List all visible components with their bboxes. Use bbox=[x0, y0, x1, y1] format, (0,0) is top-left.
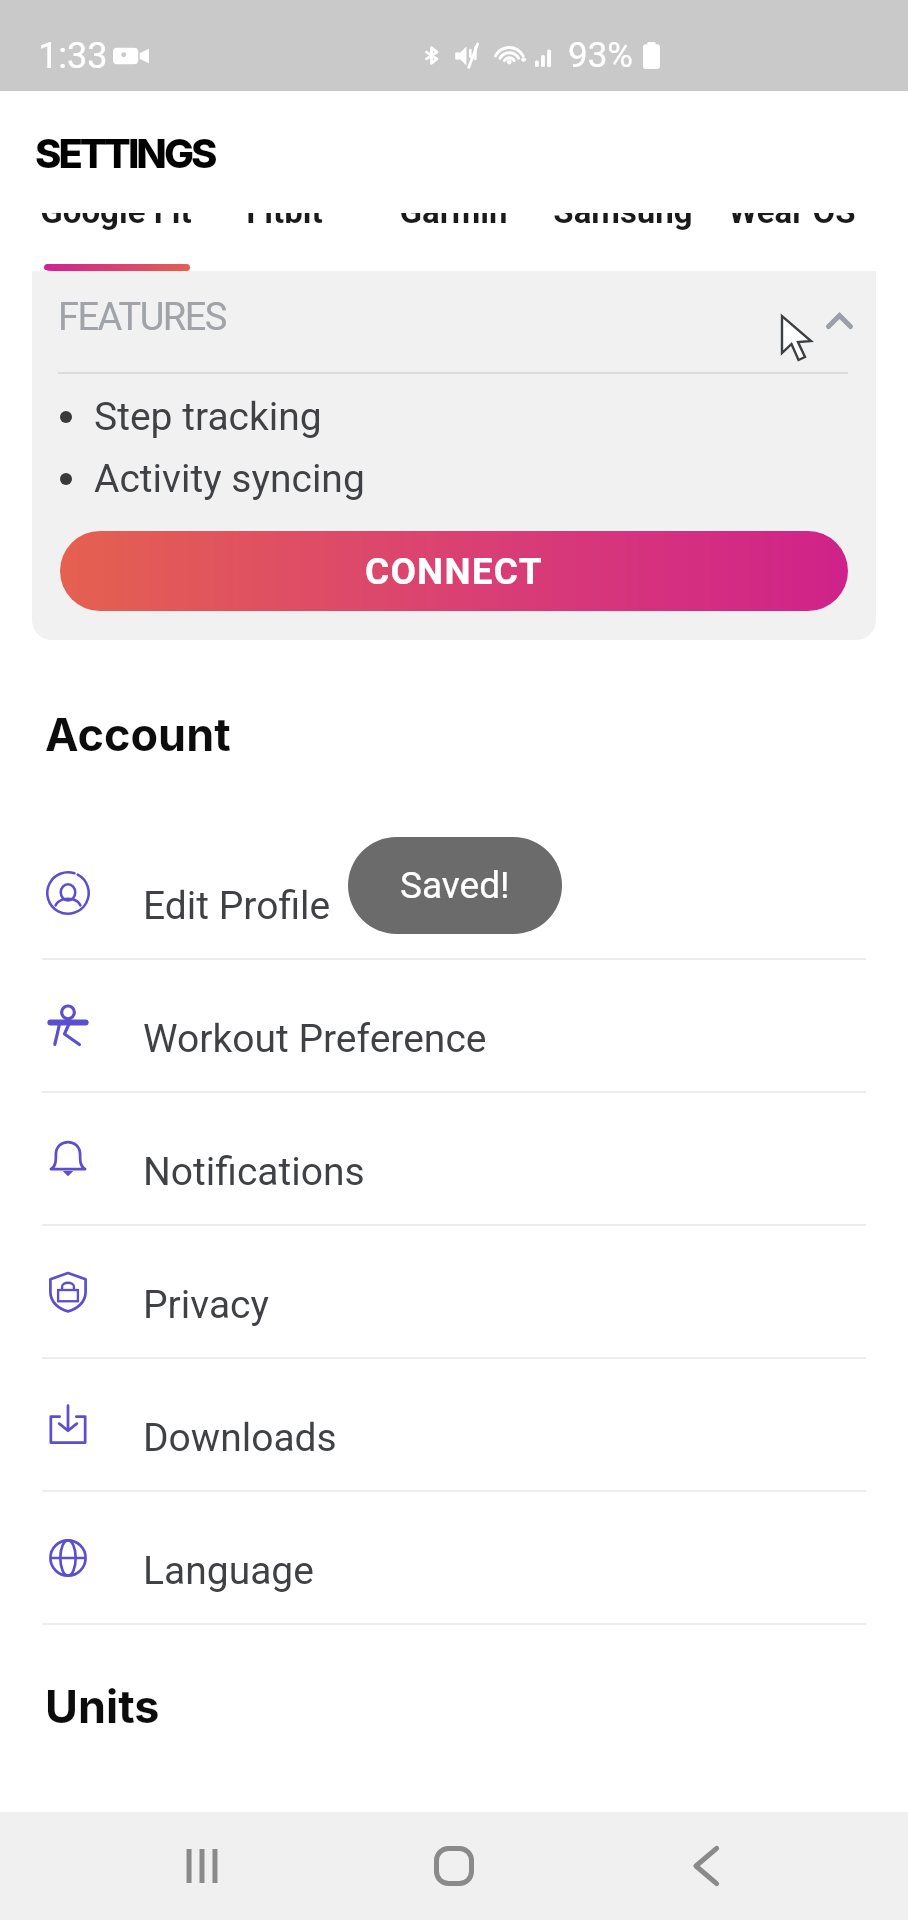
button[interactable]: Google Fit bbox=[32, 191, 200, 231]
staticText: Workout Preference bbox=[143, 1016, 487, 1062]
staticText: Fitbit bbox=[246, 192, 323, 231]
staticText: Downloads bbox=[143, 1415, 337, 1461]
staticText: 93% bbox=[568, 35, 633, 76]
button[interactable]: Notifications bbox=[0, 1093, 908, 1224]
button[interactable]: Garmin bbox=[369, 191, 538, 231]
staticText: Privacy bbox=[143, 1282, 269, 1328]
staticText: Step tracking bbox=[94, 394, 322, 440]
button[interactable]: Fitbit bbox=[200, 191, 369, 231]
staticText: Edit Profile bbox=[143, 883, 331, 929]
button[interactable]: Edit Profile bbox=[0, 827, 908, 958]
staticText: Notifications bbox=[143, 1149, 365, 1195]
button[interactable]: Privacy bbox=[0, 1226, 908, 1357]
staticText: Language bbox=[143, 1548, 314, 1594]
button[interactable]: Back bbox=[656, 1816, 756, 1916]
button[interactable]: Collapse features bbox=[809, 291, 869, 351]
staticText: Wear OS bbox=[728, 192, 856, 231]
staticText: SETTINGS bbox=[35, 129, 215, 177]
button[interactable]: Recent apps bbox=[152, 1816, 252, 1916]
button[interactable]: CONNECT bbox=[60, 531, 848, 611]
staticText: CONNECT bbox=[365, 550, 543, 593]
button[interactable]: Home bbox=[404, 1816, 504, 1916]
staticText: Google Fit bbox=[40, 192, 192, 231]
staticText: Garmin bbox=[399, 192, 508, 231]
staticText: Activity syncing bbox=[94, 456, 365, 502]
staticText: Saved! bbox=[400, 864, 510, 907]
button[interactable]: Downloads bbox=[0, 1359, 908, 1490]
button[interactable]: Samsung bbox=[538, 191, 707, 231]
button[interactable]: Wear OS bbox=[707, 191, 876, 231]
button[interactable]: Workout Preference bbox=[0, 960, 908, 1091]
staticText: 1:33 bbox=[38, 35, 108, 77]
staticText: Units bbox=[45, 1679, 160, 1733]
staticText: Samsung bbox=[553, 192, 693, 231]
button[interactable]: Language bbox=[0, 1492, 908, 1623]
staticText: Account bbox=[45, 707, 231, 761]
staticText: FEATURES bbox=[58, 295, 226, 340]
